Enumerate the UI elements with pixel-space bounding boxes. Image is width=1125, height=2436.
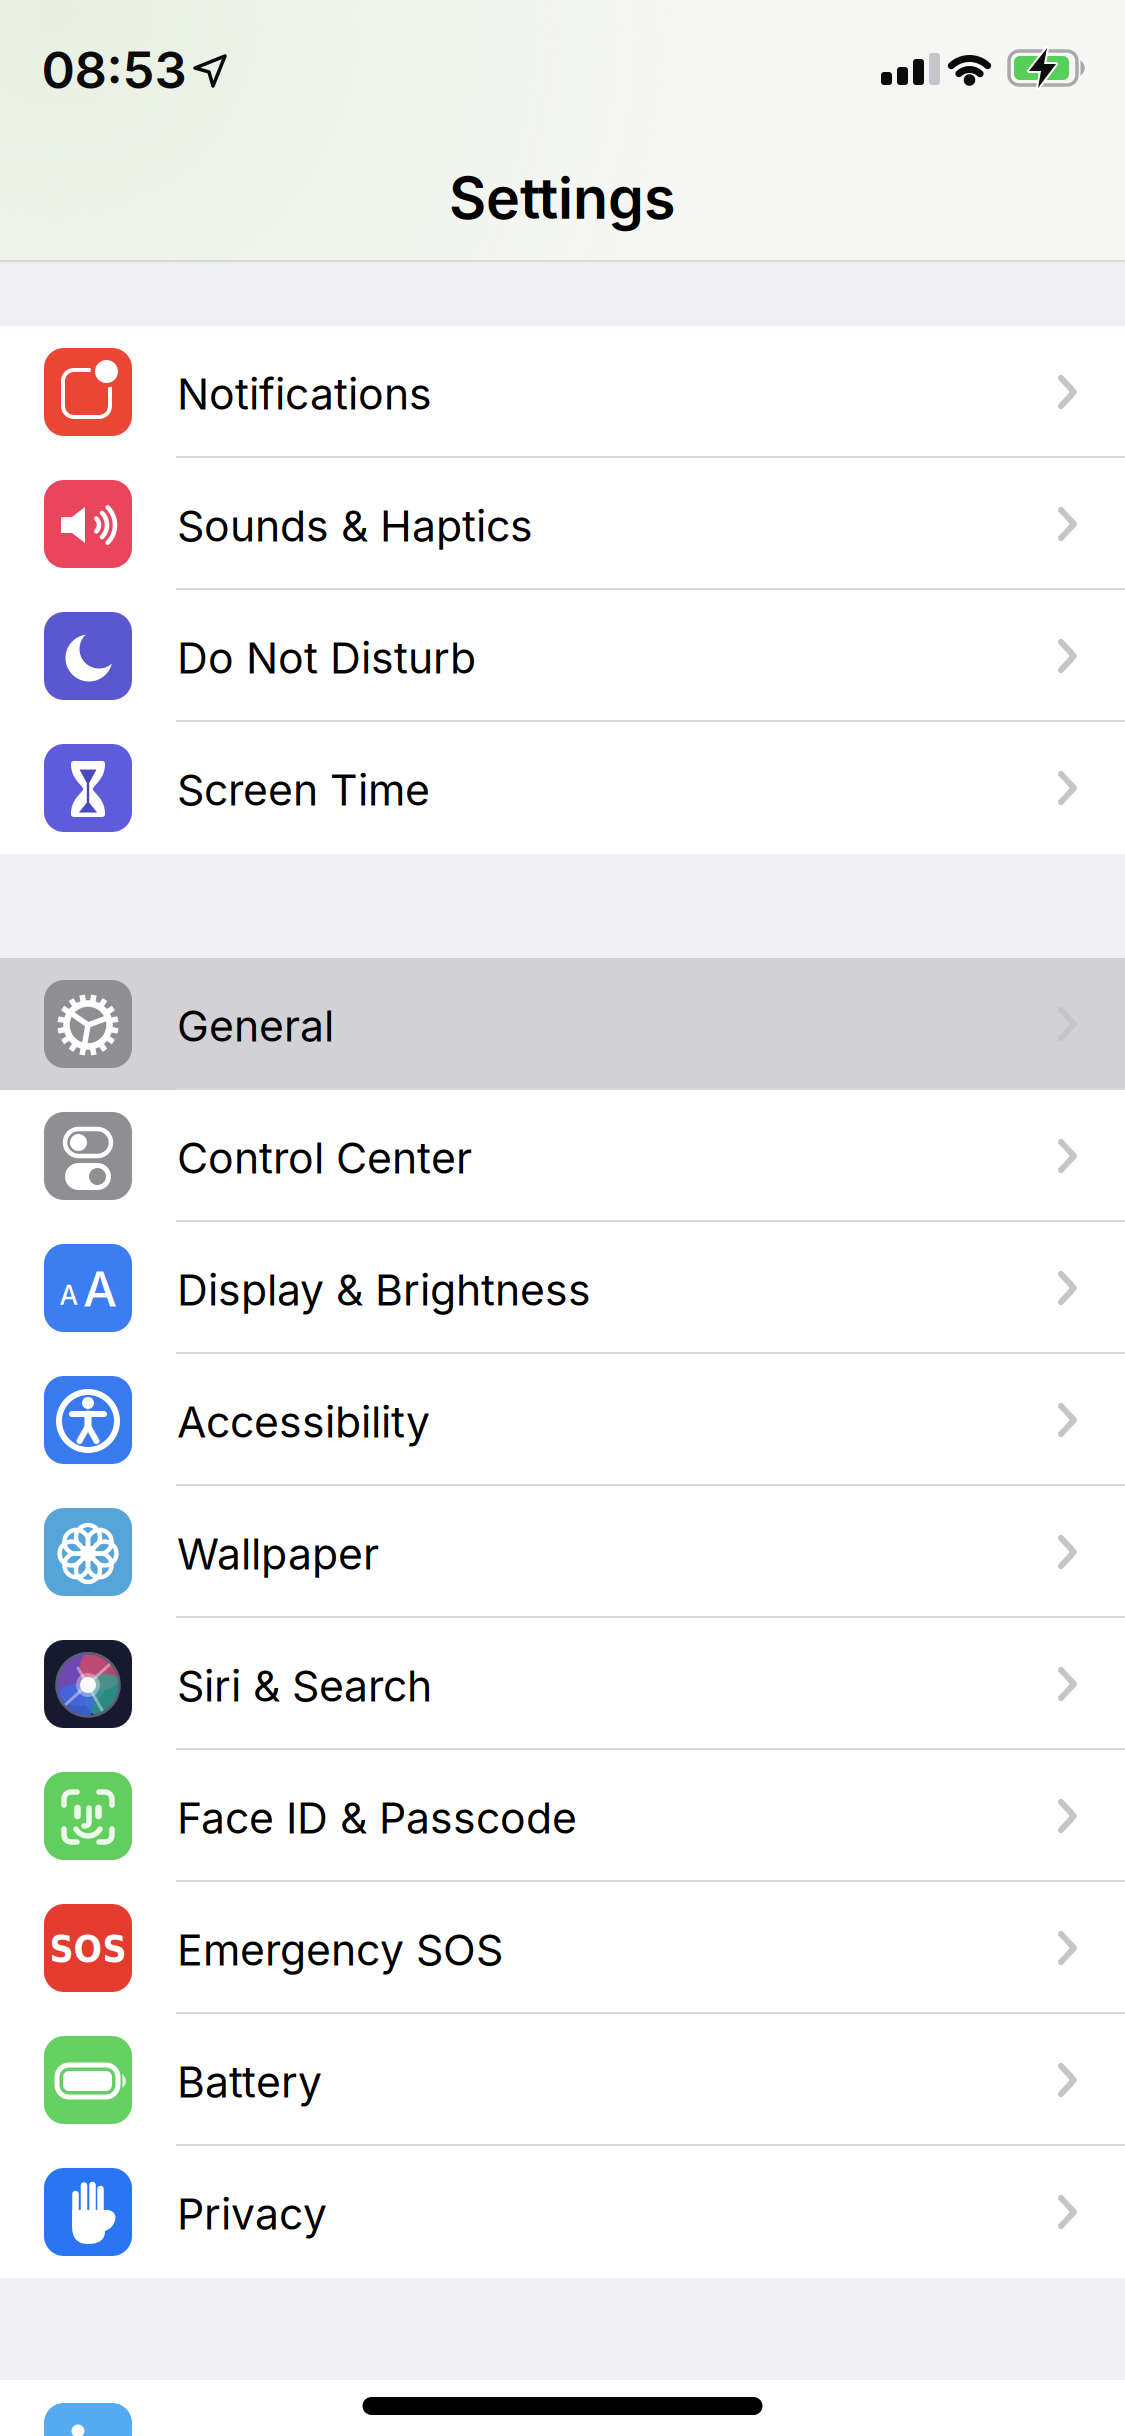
staticText: Siri & Search [177, 1660, 432, 1712]
staticText: A [59, 1279, 78, 1311]
button[interactable]: Face ID & Passcode [0, 1750, 1125, 1882]
staticText: Control Center [177, 1132, 472, 1184]
staticText: SOS [49, 1927, 126, 1971]
staticText: Sounds & Haptics [177, 500, 533, 552]
button[interactable]: Battery [0, 2014, 1125, 2146]
staticText: Battery [177, 2056, 322, 2108]
staticText: Screen Time [177, 764, 430, 816]
staticText: Settings [449, 163, 675, 233]
staticText: 08:53 [41, 39, 186, 101]
staticText: Privacy [177, 2188, 327, 2240]
staticText: Face ID & Passcode [177, 1792, 577, 1844]
button[interactable]: Screen Time [0, 722, 1125, 854]
button[interactable]: Notifications [0, 326, 1125, 458]
staticText: Do Not Disturb [177, 632, 476, 684]
button[interactable]: iTunes & App Store [0, 2380, 1125, 2436]
button[interactable]: Wallpaper [0, 1486, 1125, 1618]
button[interactable]: Accessibility [0, 1354, 1125, 1486]
staticText: Wallpaper [177, 1528, 379, 1580]
button[interactable]: Siri & Search [0, 1618, 1125, 1750]
button[interactable]: General [0, 958, 1125, 1090]
button[interactable]: SOS [0, 1882, 1125, 2014]
button[interactable]: Privacy [0, 2146, 1125, 2278]
button[interactable]: Do Not Disturb [0, 590, 1125, 722]
staticText: General [177, 1000, 334, 1052]
staticText: Notifications [177, 368, 432, 420]
staticText: A [83, 1260, 117, 1318]
staticText: Display & Brightness [177, 1264, 591, 1316]
staticText: Emergency SOS [177, 1924, 503, 1976]
button[interactable]: Sounds & Haptics [0, 458, 1125, 590]
button[interactable]: A [0, 1222, 1125, 1354]
button[interactable]: Control Center [0, 1090, 1125, 1222]
staticText: Accessibility [177, 1396, 430, 1448]
